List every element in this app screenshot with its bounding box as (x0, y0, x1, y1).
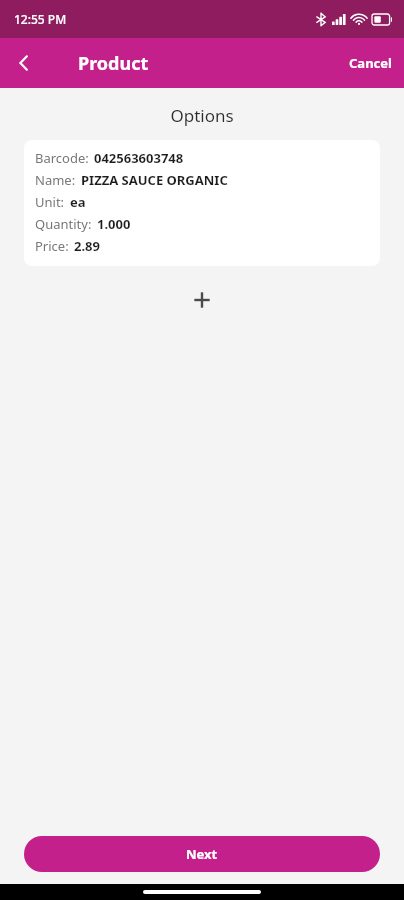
staticText: 1.000 (97, 215, 131, 233)
staticText: Price: (35, 237, 69, 255)
button[interactable]: Back (0, 39, 48, 87)
button[interactable]: Barcode: (24, 140, 380, 266)
staticText: PIZZA SAUCE ORGANIC (81, 171, 228, 189)
button[interactable]: Next (24, 836, 380, 872)
staticText: Cancel (349, 54, 392, 72)
staticText: 2.89 (74, 237, 100, 255)
staticText: 042563603748 (94, 149, 184, 167)
staticText: Name: (35, 171, 76, 189)
button[interactable]: Add item (181, 279, 223, 321)
staticText: ea (70, 193, 86, 211)
staticText: Next (186, 845, 218, 863)
staticText: Barcode: (35, 149, 89, 167)
staticText: 12:55 PM (14, 11, 67, 27)
staticText: Unit: (35, 193, 65, 211)
staticText: Product (78, 51, 149, 76)
staticText: Quantity: (35, 215, 92, 233)
staticText: Options (0, 104, 404, 127)
button[interactable]: Cancel (337, 42, 404, 84)
